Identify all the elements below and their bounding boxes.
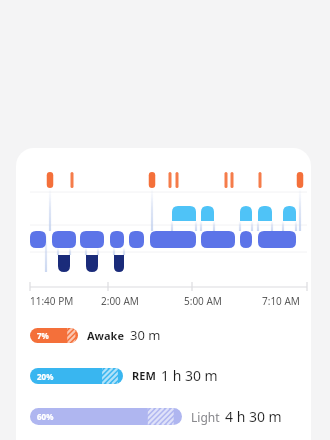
button[interactable]: 7% <box>16 323 311 347</box>
staticText: 30 m <box>130 326 161 344</box>
staticText: 4 h 30 m <box>225 407 282 426</box>
staticText: 1 h 30 m <box>161 366 218 385</box>
staticText: 11:40 PM <box>30 294 74 308</box>
staticText: 2:00 AM <box>101 294 139 308</box>
button[interactable]: Sleep stages chart <box>16 148 311 440</box>
button[interactable]: 20% <box>16 363 311 388</box>
staticText: REM <box>132 368 156 383</box>
staticText: 20% <box>37 371 54 382</box>
staticText: 7:10 AM <box>262 294 300 308</box>
button[interactable]: 60% <box>16 404 311 429</box>
staticText: 7% <box>37 330 49 341</box>
staticText: 5:00 AM <box>184 294 222 308</box>
staticText: Awake <box>87 328 125 343</box>
staticText: Light <box>191 409 220 425</box>
staticText: 60% <box>37 411 54 422</box>
